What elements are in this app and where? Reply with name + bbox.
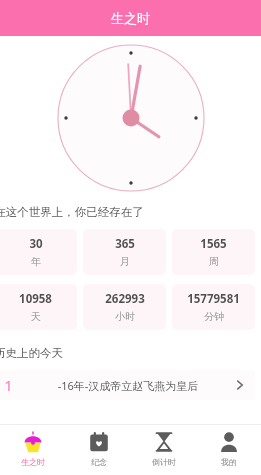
staticText: 1 bbox=[4, 375, 13, 395]
staticText: 生之时 bbox=[111, 10, 150, 26]
button[interactable]: 10958 bbox=[0, 284, 77, 330]
button[interactable]: 15779581 bbox=[172, 284, 255, 330]
staticText: 小时 bbox=[115, 310, 135, 323]
staticText: 天 bbox=[31, 310, 41, 323]
staticText: 倒计时 bbox=[152, 457, 176, 467]
button[interactable]: 365 bbox=[83, 229, 166, 275]
button[interactable]: 倒计时 bbox=[131, 425, 196, 475]
staticText: 1565 bbox=[200, 236, 227, 252]
staticText: 262993 bbox=[105, 291, 145, 307]
staticText: 纪念 bbox=[91, 457, 107, 467]
staticText: 365 bbox=[115, 236, 135, 252]
staticText: 15779581 bbox=[187, 291, 240, 307]
staticText: 月 bbox=[120, 255, 130, 268]
button[interactable]: 生之时 bbox=[0, 425, 66, 475]
staticText: 在这个世界上，你已经存在了 bbox=[0, 205, 144, 219]
button[interactable]: 262993 bbox=[83, 284, 166, 330]
button[interactable]: 1 bbox=[0, 370, 255, 400]
button[interactable]: 我的 bbox=[196, 425, 261, 475]
staticText: 30 bbox=[29, 236, 43, 252]
button[interactable]: 30 bbox=[0, 229, 77, 275]
button[interactable]: 纪念 bbox=[66, 425, 131, 475]
staticText: 分钟 bbox=[204, 310, 224, 323]
staticText: 周 bbox=[209, 255, 219, 268]
staticText: 我的 bbox=[221, 457, 237, 467]
staticText: 年 bbox=[31, 255, 41, 268]
staticText: 生之时 bbox=[21, 457, 45, 467]
staticText: 10958 bbox=[19, 291, 52, 307]
staticText: 历史上的今天 bbox=[0, 346, 63, 360]
staticText: -16年-汉成帝立赵飞燕为皇后 bbox=[23, 378, 233, 393]
button[interactable]: 1565 bbox=[172, 229, 255, 275]
